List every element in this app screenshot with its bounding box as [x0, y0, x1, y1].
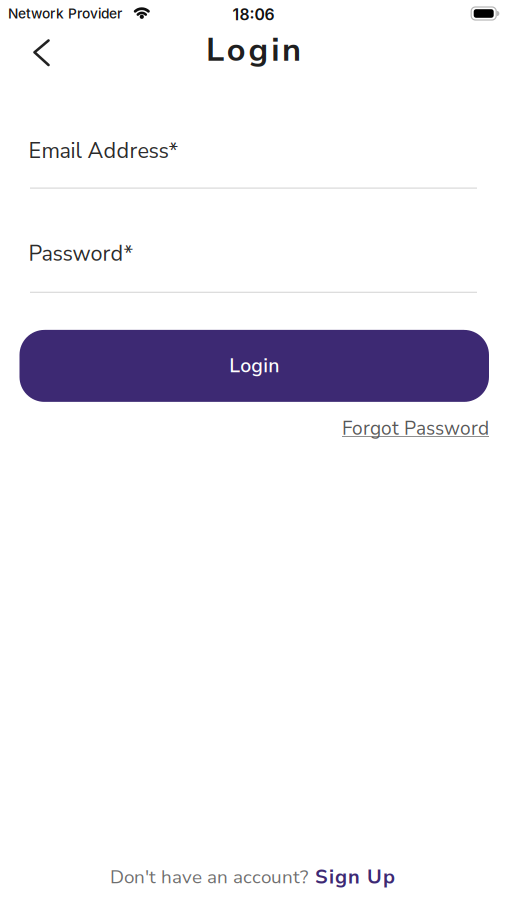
button[interactable]: Sign Up — [315, 866, 397, 888]
staticText: g — [248, 28, 268, 72]
staticText: L — [206, 28, 224, 72]
staticText: Password* — [28, 239, 133, 268]
staticText: Login — [229, 353, 279, 379]
staticText: Sign Up — [315, 863, 395, 891]
staticText: Forgot Password — [342, 415, 489, 441]
staticText: i — [271, 28, 279, 72]
staticText: Don't have an account? — [110, 864, 308, 890]
button[interactable]: Forgot Password — [342, 415, 489, 441]
staticText: 18:06 — [232, 5, 274, 24]
staticText: Network Provider — [8, 5, 122, 22]
button[interactable]: Login — [0, 330, 507, 402]
button[interactable]: Back — [0, 34, 50, 65]
staticText: o — [227, 28, 246, 72]
staticText: Email Address* — [28, 136, 178, 166]
staticText: n — [282, 28, 301, 72]
